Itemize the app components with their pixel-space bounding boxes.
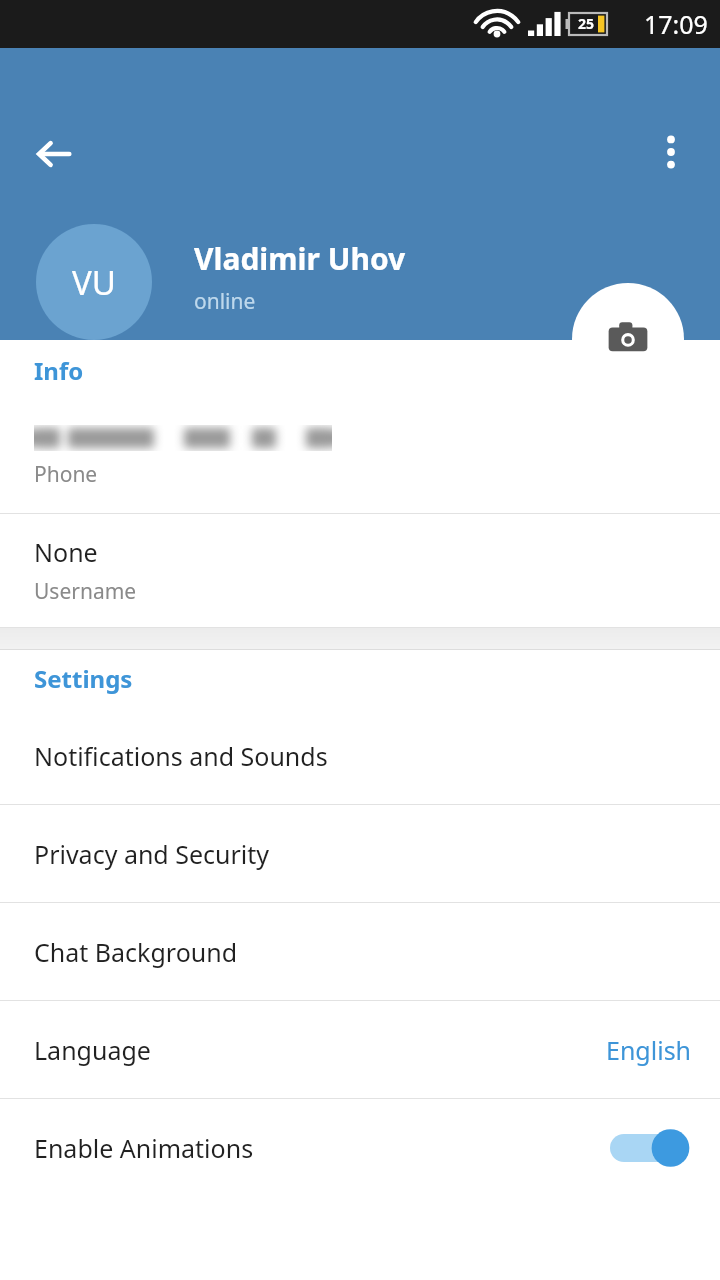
button[interactable]: Privacy and Security [0,805,720,902]
staticText: Privacy and Security [34,837,270,871]
staticText: Phone [34,460,98,489]
button[interactable]: Back [24,124,84,184]
staticText: Vladimir Uhov [194,238,406,279]
staticText: Enable Animations [34,1131,254,1165]
button[interactable]: Phone [0,400,720,513]
button[interactable]: Change profile photo [572,283,684,395]
staticText: English [606,1033,692,1067]
staticText: Chat Background [34,935,238,969]
button[interactable]: None [0,514,720,627]
staticText: Language [34,1033,151,1067]
staticText: 25 [571,14,601,33]
button[interactable]: VU [36,224,152,340]
button[interactable]: Notifications and Sounds [0,707,720,804]
other: Enable Animations toggle [610,1125,694,1171]
staticText: Notifications and Sounds [34,739,328,773]
staticText: online [194,287,256,316]
staticText: VU [72,260,116,305]
staticText: Username [34,577,137,606]
button[interactable]: Chat Background [0,903,720,1000]
staticText: Info [34,354,84,387]
button[interactable]: More options [643,124,699,180]
button[interactable]: Language [0,1001,720,1098]
button[interactable]: Enable Animations [0,1099,720,1196]
staticText: None [34,535,98,569]
staticText: Settings [34,662,133,695]
staticText: 17:09 [644,7,708,41]
